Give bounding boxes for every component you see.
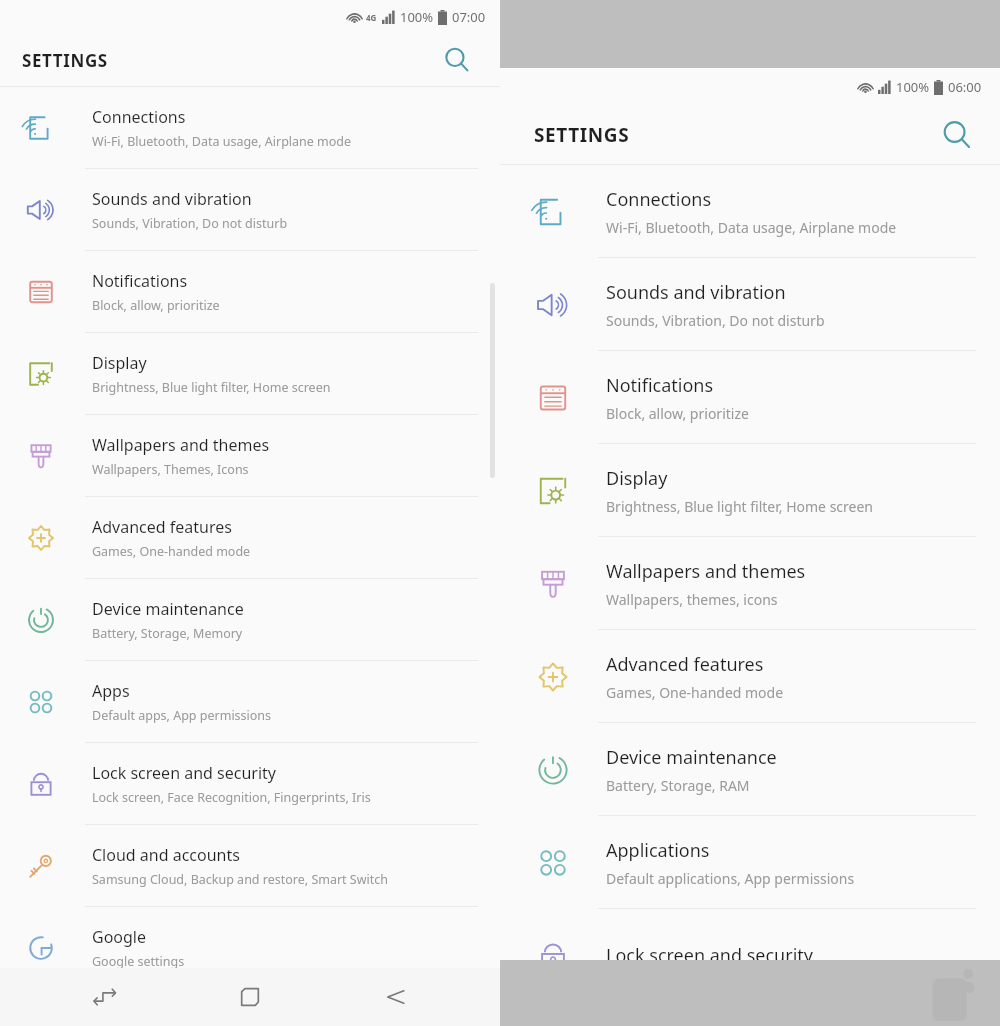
staticText: Advanced features <box>92 516 232 538</box>
staticText: Lock screen, Face Recognition, Fingerpri… <box>92 789 371 806</box>
staticText: Cloud and accounts <box>92 844 240 866</box>
staticText: Wi-Fi, Bluetooth, Data usage, Airplane m… <box>606 218 897 237</box>
button[interactable]: Search <box>434 37 480 83</box>
button[interactable]: Notifications <box>0 251 500 333</box>
button[interactable]: Wallpapers and themes <box>0 415 500 497</box>
button[interactable]: Recent apps <box>65 968 145 1026</box>
button[interactable]: Back <box>355 968 435 1026</box>
staticText: Advanced features <box>606 652 764 677</box>
staticText: Games, One-handed mode <box>92 543 251 560</box>
staticText: Wallpapers, Themes, Icons <box>92 461 249 478</box>
staticText: Sounds and vibration <box>606 280 786 305</box>
staticText: Default applications, App permissions <box>606 869 855 888</box>
staticText: Battery, Storage, RAM <box>606 776 750 795</box>
staticText: Connections <box>606 187 712 212</box>
staticText: 07:00 <box>452 8 486 26</box>
staticText: Block, allow, prioritize <box>606 404 749 423</box>
staticText: Sounds and vibration <box>92 188 252 210</box>
button[interactable]: Advanced features <box>500 630 1000 723</box>
button[interactable]: Device maintenance <box>0 579 500 661</box>
button[interactable]: Advanced features <box>0 497 500 579</box>
button[interactable]: Home <box>210 968 290 1026</box>
staticText: Sounds, Vibration, Do not disturb <box>606 311 825 330</box>
staticText: Wallpapers and themes <box>606 559 806 584</box>
button[interactable]: Google <box>0 907 500 989</box>
staticText: SETTINGS <box>22 49 108 72</box>
button[interactable]: Cloud and accounts <box>0 825 500 907</box>
button[interactable]: Connections <box>0 87 500 169</box>
staticText: Device maintenance <box>92 598 244 620</box>
staticText: Battery, Storage, Memory <box>92 625 243 642</box>
staticText: Block, allow, prioritize <box>92 297 220 314</box>
staticText: Display <box>606 466 668 491</box>
staticText: Display <box>92 352 147 374</box>
staticText: Google settings <box>92 953 185 970</box>
staticText: Games, One-handed mode <box>606 683 784 702</box>
staticText: Wi-Fi, Bluetooth, Data usage, Airplane m… <box>92 133 352 150</box>
staticText: 06:00 <box>948 78 982 96</box>
button[interactable]: Search <box>934 112 980 158</box>
staticText: Device maintenance <box>606 745 777 770</box>
button[interactable]: Wallpapers and themes <box>500 537 1000 630</box>
button[interactable]: Notifications <box>500 351 1000 444</box>
button[interactable]: Display <box>0 333 500 415</box>
button[interactable]: Sounds and vibration <box>0 169 500 251</box>
staticText: 100% <box>896 78 930 96</box>
staticText: Samsung Cloud, Backup and restore, Smart… <box>92 871 389 888</box>
button[interactable]: Connections <box>500 165 1000 258</box>
staticText: 100% <box>400 8 434 26</box>
button[interactable]: Applications <box>500 816 1000 909</box>
staticText: Default apps, App permissions <box>92 707 272 724</box>
staticText: Wallpapers, themes, icons <box>606 590 778 609</box>
button[interactable]: Lock screen and security <box>500 909 1000 1002</box>
staticText: Brightness, Blue light filter, Home scre… <box>92 379 331 396</box>
staticText: SETTINGS <box>534 122 630 148</box>
staticText: Lock screen and security <box>92 762 276 784</box>
staticText: Sounds, Vibration, Do not disturb <box>92 215 288 232</box>
button[interactable]: Lock screen and security <box>0 743 500 825</box>
button[interactable]: Sounds and vibration <box>500 258 1000 351</box>
staticText: Brightness, Blue light filter, Home scre… <box>606 497 874 516</box>
staticText: Wallpapers and themes <box>92 434 270 456</box>
staticText: Notifications <box>606 373 714 398</box>
button[interactable]: Apps <box>0 661 500 743</box>
staticText: Notifications <box>92 270 188 292</box>
staticText: Connections <box>92 106 186 128</box>
staticText: Google <box>92 926 147 948</box>
staticText: Applications <box>606 838 710 863</box>
staticText: Lock screen and security <box>606 943 813 968</box>
button[interactable]: Display <box>500 444 1000 537</box>
staticText: 4G <box>366 12 377 23</box>
staticText: Apps <box>92 680 130 702</box>
button[interactable]: Device maintenance <box>500 723 1000 816</box>
